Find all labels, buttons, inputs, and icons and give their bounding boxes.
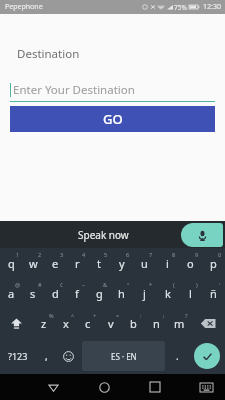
button[interactable]: o <box>179 248 202 278</box>
staticText: ?123 <box>8 350 28 362</box>
button[interactable]: , <box>36 341 57 371</box>
button[interactable]: r <box>66 248 88 278</box>
staticText: = <box>116 312 120 319</box>
staticText: 3 <box>60 251 64 258</box>
staticText: Enter Your Destination <box>13 82 135 98</box>
staticText: Destination <box>17 46 80 62</box>
button[interactable]: d <box>44 278 66 308</box>
button[interactable]: Emoji <box>57 341 80 371</box>
staticText: b <box>130 316 137 331</box>
staticText: ° <box>127 281 130 288</box>
button[interactable]: Backspace <box>191 308 225 338</box>
button[interactable]: m <box>168 308 191 338</box>
staticText: a <box>8 286 15 301</box>
staticText: p <box>210 256 217 271</box>
staticText: r <box>75 256 80 271</box>
staticText: ñ <box>210 286 217 301</box>
button[interactable]: y <box>110 248 133 278</box>
staticText: 7 <box>149 251 153 258</box>
staticText: ^ <box>71 312 75 319</box>
button[interactable]: p <box>202 248 225 278</box>
staticText: z <box>41 316 47 331</box>
staticText: m <box>174 316 185 331</box>
staticText: y <box>119 256 125 271</box>
button[interactable]: u <box>133 248 156 278</box>
staticText: @ <box>15 281 20 288</box>
staticText: c <box>85 316 91 331</box>
staticText: 75% <box>174 3 187 12</box>
staticText: f <box>75 286 79 301</box>
staticText: 4 <box>82 251 86 258</box>
button[interactable]: z <box>33 308 55 338</box>
button[interactable]: ?123 <box>0 341 36 371</box>
button[interactable]: q <box>0 248 22 278</box>
staticText: ? <box>185 312 188 319</box>
staticText: , <box>45 349 48 363</box>
button[interactable]: v <box>99 308 122 338</box>
staticText: ~ <box>82 281 86 288</box>
staticText: # <box>38 281 42 288</box>
button[interactable]: Voice input <box>181 223 223 247</box>
staticText: 6 <box>126 251 130 258</box>
button[interactable]: g <box>88 278 110 308</box>
button[interactable]: f <box>66 278 88 308</box>
button[interactable]: ñ <box>202 278 225 308</box>
button[interactable]: n <box>145 308 168 338</box>
staticText: g <box>96 286 103 301</box>
button[interactable]: Shift <box>0 308 33 338</box>
button[interactable]: GO <box>10 106 215 132</box>
button[interactable]: t <box>88 248 110 278</box>
staticText: Pepephone <box>5 2 43 12</box>
button[interactable]: ES · EN <box>82 341 165 371</box>
staticText: ( <box>173 281 175 288</box>
staticText: v <box>108 316 114 331</box>
button[interactable]: j <box>133 278 156 308</box>
button[interactable]: k <box>156 278 179 308</box>
button[interactable]: e <box>44 248 66 278</box>
staticText: 1 <box>16 251 20 258</box>
button[interactable]: Enter <box>194 343 220 369</box>
button[interactable]: h <box>110 278 133 308</box>
button[interactable]: s <box>22 278 44 308</box>
button[interactable]: Recents <box>142 374 168 400</box>
staticText: GO <box>103 110 123 128</box>
staticText: 2 <box>38 251 42 258</box>
staticText: & <box>103 281 108 288</box>
button[interactable]: . <box>167 341 188 371</box>
staticText: ) <box>196 281 198 288</box>
button[interactable]: l <box>179 278 202 308</box>
staticText: w <box>29 256 38 271</box>
staticText: ' <box>219 281 221 288</box>
staticText: % <box>49 312 54 319</box>
staticText: s <box>30 286 36 301</box>
button[interactable]: a <box>0 278 22 308</box>
staticText: ¢ <box>60 281 64 288</box>
button[interactable]: i <box>156 248 179 278</box>
staticText: * <box>149 281 153 288</box>
button[interactable]: x <box>55 308 77 338</box>
button[interactable]: Hide keyboard <box>193 374 219 400</box>
button[interactable]: Home <box>91 374 117 400</box>
staticText: i <box>166 256 169 271</box>
staticText: n <box>153 316 160 331</box>
button[interactable]: c <box>77 308 99 338</box>
staticText: e <box>52 256 59 271</box>
staticText: ES · EN <box>111 351 137 362</box>
button[interactable]: b <box>122 308 145 338</box>
staticText: 8 <box>172 251 176 258</box>
staticText: + <box>93 312 97 319</box>
button[interactable]: Back <box>40 374 66 400</box>
staticText: 5 <box>104 251 108 258</box>
staticText: h <box>118 286 125 301</box>
staticText: 12:30 <box>203 2 221 12</box>
staticText: . <box>176 349 179 363</box>
staticText: k <box>165 286 171 301</box>
staticText: o <box>187 256 194 271</box>
staticText: Speak now <box>78 228 129 242</box>
staticText: u <box>141 256 148 271</box>
staticText: q <box>8 256 15 271</box>
staticText: 9 <box>195 251 199 258</box>
staticText: l <box>189 286 192 301</box>
staticText: 0 <box>218 251 222 258</box>
button[interactable]: w <box>22 248 44 278</box>
